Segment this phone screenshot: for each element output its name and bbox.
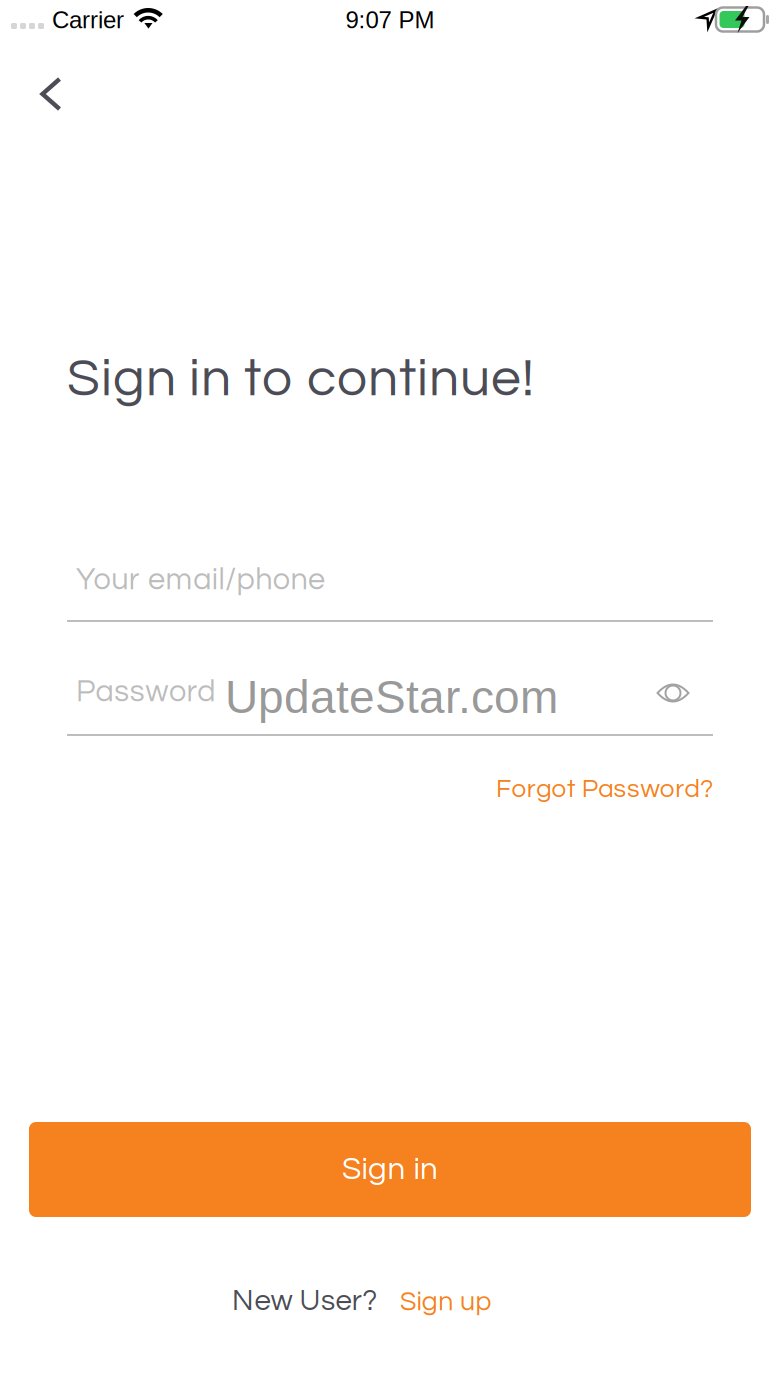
button[interactable]: Sign up (400, 1278, 540, 1326)
staticText: Sign in to continue! (67, 351, 534, 406)
staticText: Your email/phone (76, 564, 325, 596)
button[interactable]: Show password (640, 660, 706, 726)
staticText: Sign in (342, 1153, 438, 1186)
button[interactable]: Forgot Password? (453, 763, 713, 815)
staticText: Sign up (400, 1288, 491, 1316)
staticText: Carrier (52, 7, 124, 33)
button[interactable]: Back (7, 50, 95, 138)
staticText: 9:07 PM (345, 7, 434, 33)
staticText: Forgot Password? (496, 776, 713, 802)
staticText: Password (76, 676, 215, 708)
button[interactable]: Sign in (29, 1122, 751, 1217)
staticText: UpdateStar.com (225, 671, 558, 723)
staticText: New User? (232, 1286, 377, 1316)
